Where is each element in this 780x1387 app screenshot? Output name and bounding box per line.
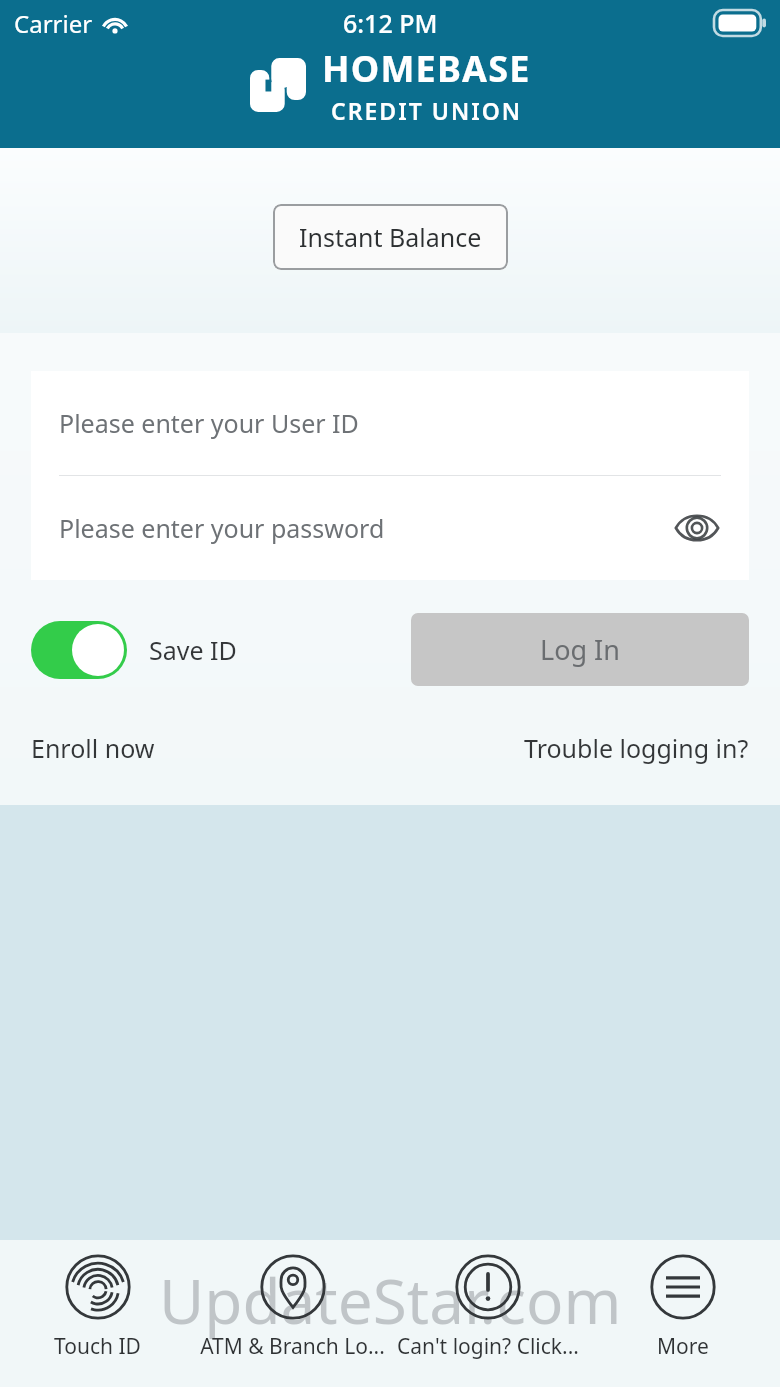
staticText: Instant Balance <box>299 220 482 254</box>
staticText: Can't login? Click... <box>397 1332 579 1361</box>
button[interactable]: ATM & Branch Lo... <box>195 1240 390 1387</box>
staticText: More <box>657 1332 709 1361</box>
button[interactable]: Instant Balance <box>273 204 508 270</box>
button[interactable]: Can't login? Click... <box>390 1240 585 1387</box>
staticText: Save ID <box>149 633 237 667</box>
staticText: Touch ID <box>54 1332 141 1361</box>
button[interactable]: Save ID toggle <box>31 621 237 679</box>
staticText: CREDIT UNION <box>331 95 522 126</box>
staticText: ATM & Branch Lo... <box>200 1332 385 1361</box>
button[interactable]: Touch ID <box>0 1240 195 1387</box>
staticText: HOMEBASE <box>322 44 531 93</box>
staticText: Carrier <box>14 7 93 40</box>
staticText: Please enter your User ID <box>59 406 359 440</box>
staticText: Trouble logging in? <box>524 731 749 765</box>
staticText: Enroll now <box>31 731 155 765</box>
button[interactable]: Please enter your password <box>31 476 749 580</box>
staticText: Log In <box>540 631 620 668</box>
staticText: UpdateStar.com <box>159 1258 622 1342</box>
button[interactable]: Log In <box>411 613 749 686</box>
staticText: Please enter your password <box>59 511 385 545</box>
button[interactable]: Please enter your User ID <box>31 371 749 475</box>
button[interactable]: Save ID toggle <box>31 621 127 679</box>
button[interactable]: Trouble logging in? <box>524 731 749 765</box>
button[interactable]: More <box>585 1240 780 1387</box>
button[interactable]: Show password <box>673 504 721 552</box>
staticText: 6:12 PM <box>343 6 438 40</box>
button[interactable]: Enroll now <box>31 731 155 765</box>
